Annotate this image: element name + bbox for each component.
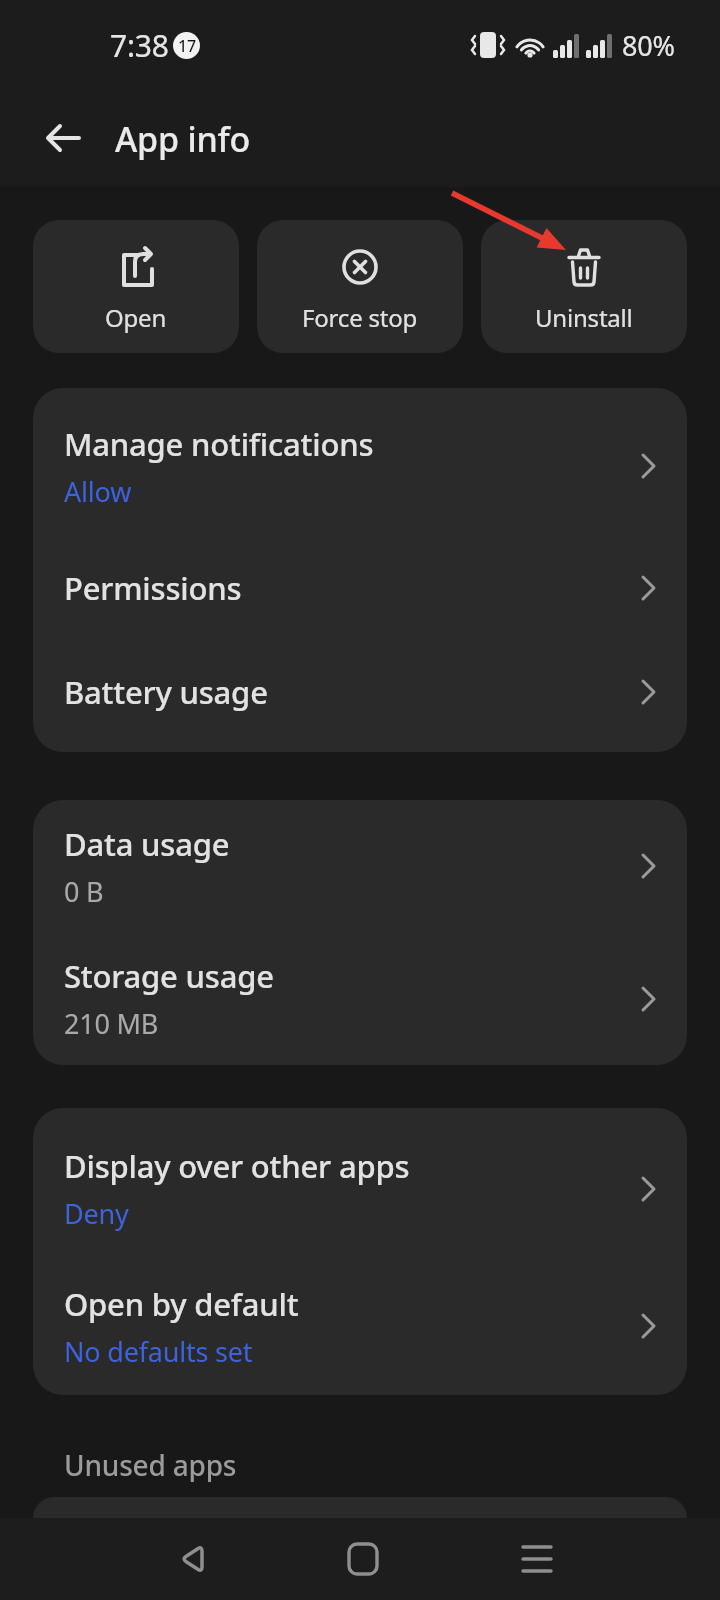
- button[interactable]: Data usage: [33, 800, 687, 932]
- staticText: Deny: [64, 1195, 129, 1232]
- button[interactable]: Force stop: [257, 220, 463, 353]
- staticText: Display over other apps: [64, 1145, 410, 1187]
- staticText: App info: [115, 116, 251, 162]
- staticText: Storage usage: [64, 955, 274, 997]
- button[interactable]: [30, 105, 96, 171]
- button[interactable]: Battery usage: [33, 640, 687, 744]
- staticText: Open: [105, 301, 167, 334]
- staticText: Unused apps: [64, 1446, 237, 1482]
- button[interactable]: Open by default: [33, 1257, 687, 1395]
- staticText: 210 MB: [64, 1005, 159, 1042]
- button[interactable]: Uninstall: [481, 220, 687, 353]
- staticText: 80%: [622, 27, 675, 64]
- staticText: Permissions: [64, 567, 242, 609]
- staticText: No defaults set: [64, 1333, 253, 1370]
- staticText: 7:38: [110, 25, 169, 66]
- staticText: 17: [178, 35, 196, 57]
- staticText: Allow: [64, 473, 132, 510]
- button[interactable]: Display over other apps: [33, 1120, 687, 1257]
- button[interactable]: Open: [33, 220, 239, 353]
- button[interactable]: Permissions: [33, 536, 687, 640]
- staticText: Manage notifications: [64, 423, 374, 465]
- button[interactable]: [497, 1518, 577, 1600]
- button[interactable]: [323, 1518, 403, 1600]
- staticText: Open by default: [64, 1283, 299, 1325]
- staticText: Force stop: [302, 301, 418, 334]
- staticText: Uninstall: [535, 301, 633, 334]
- staticText: 0 B: [64, 873, 104, 910]
- button[interactable]: Storage usage: [33, 932, 687, 1065]
- button[interactable]: Manage notifications: [33, 396, 687, 536]
- staticText: Battery usage: [64, 671, 268, 713]
- staticText: Data usage: [64, 823, 230, 865]
- button[interactable]: [153, 1518, 233, 1600]
